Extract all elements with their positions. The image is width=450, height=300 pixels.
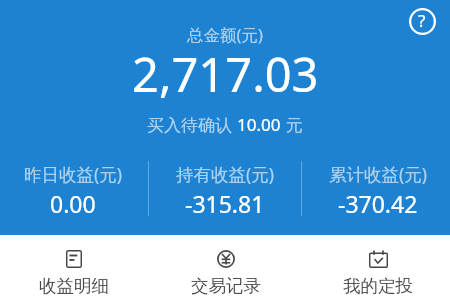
- button[interactable]: 交易记录: [150, 235, 302, 300]
- staticText: ?: [418, 9, 426, 32]
- staticText: 元: [281, 113, 303, 136]
- staticText: 我的定投: [343, 275, 413, 297]
- button[interactable]: 我的定投: [302, 235, 450, 300]
- button[interactable]: 持有收益(元): [149, 155, 301, 225]
- staticText: 昨日收益(元): [24, 162, 122, 186]
- staticText: 2,717.03: [132, 42, 319, 106]
- staticText: 10.00: [237, 113, 281, 136]
- button[interactable]: 昨日收益(元): [0, 155, 148, 225]
- staticText: -315.81: [185, 188, 265, 219]
- staticText: 买入待确认: [147, 113, 237, 136]
- staticText: 交易记录: [191, 275, 261, 297]
- staticText: -370.42: [338, 188, 418, 219]
- staticText: 0.00: [50, 188, 96, 219]
- button[interactable]: 累计收益(元): [302, 155, 450, 225]
- staticText: 收益明细: [39, 275, 109, 297]
- button[interactable]: 收益明细: [0, 235, 150, 300]
- button[interactable]: Help: [404, 3, 440, 39]
- staticText: 累计收益(元): [329, 162, 427, 186]
- staticText: 持有收益(元): [176, 162, 274, 186]
- staticText: 总金额(元): [187, 23, 263, 46]
